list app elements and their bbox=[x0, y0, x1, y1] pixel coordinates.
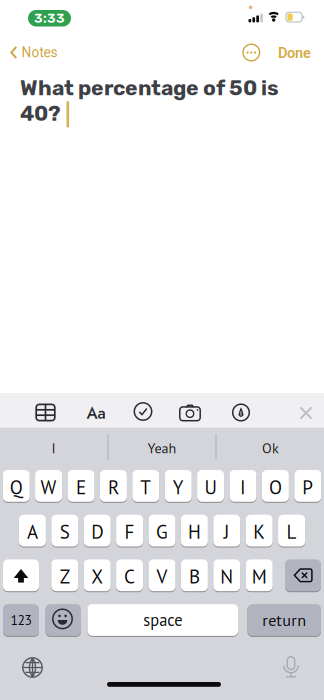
staticText: T bbox=[140, 475, 151, 499]
staticText: A bbox=[27, 519, 38, 544]
staticText: H bbox=[188, 519, 201, 544]
button[interactable]: X bbox=[84, 559, 111, 592]
staticText: L bbox=[287, 519, 297, 544]
button[interactable]: I bbox=[229, 470, 256, 503]
staticText: O bbox=[269, 475, 282, 499]
staticText: 123 bbox=[10, 611, 31, 629]
staticText: Ok bbox=[262, 439, 279, 457]
button[interactable]: O bbox=[262, 470, 289, 503]
button[interactable]: Ok bbox=[217, 429, 324, 467]
button[interactable]: L bbox=[278, 515, 305, 547]
button[interactable]: C bbox=[116, 559, 143, 592]
button[interactable]: E bbox=[67, 470, 94, 503]
staticText: space bbox=[143, 609, 182, 631]
staticText: Y bbox=[173, 475, 184, 499]
button[interactable]: Emoji bbox=[45, 604, 81, 637]
staticText: What percentage of 50 is 40? bbox=[20, 76, 279, 126]
button[interactable]: A bbox=[19, 515, 46, 547]
button[interactable]: Return bbox=[247, 604, 321, 637]
button[interactable]: N bbox=[213, 559, 240, 592]
staticText: Done bbox=[278, 45, 311, 62]
staticText: Aa bbox=[86, 401, 105, 425]
staticText: I bbox=[51, 439, 55, 457]
staticText: C bbox=[124, 564, 135, 589]
staticText: S bbox=[60, 519, 70, 544]
button[interactable]: Dismiss keyboard bbox=[299, 406, 313, 420]
button[interactable]: M bbox=[246, 559, 273, 592]
button[interactable]: Z bbox=[51, 559, 78, 592]
button[interactable]: P bbox=[294, 470, 321, 503]
staticText: I bbox=[240, 475, 246, 499]
button[interactable]: K bbox=[246, 515, 273, 547]
button[interactable]: I bbox=[0, 429, 107, 467]
button[interactable]: H bbox=[181, 515, 208, 547]
button[interactable]: D bbox=[84, 515, 111, 547]
staticText: Q bbox=[10, 475, 23, 499]
staticText: V bbox=[156, 564, 167, 589]
button[interactable]: Done bbox=[278, 45, 311, 62]
staticText: M bbox=[252, 564, 267, 589]
button[interactable]: Shift bbox=[3, 559, 39, 592]
staticText: K bbox=[253, 519, 265, 544]
button[interactable]: W bbox=[35, 470, 62, 503]
button[interactable]: Insert table bbox=[34, 402, 56, 422]
button[interactable]: Camera bbox=[179, 402, 203, 422]
staticText: D bbox=[91, 519, 103, 544]
button[interactable]: Dictate bbox=[283, 656, 299, 678]
staticText: B bbox=[189, 564, 200, 589]
staticText: N bbox=[220, 564, 233, 589]
button[interactable]: F bbox=[116, 515, 143, 547]
button[interactable]: Format bbox=[86, 401, 105, 425]
staticText: return bbox=[262, 609, 306, 630]
button[interactable]: More bbox=[243, 44, 260, 61]
staticText: Notes bbox=[21, 44, 57, 61]
button[interactable]: space bbox=[87, 604, 238, 637]
staticText: X bbox=[91, 564, 103, 589]
button[interactable]: Numbers bbox=[3, 604, 39, 637]
staticText: W bbox=[41, 475, 57, 499]
button[interactable]: Next keyboard bbox=[21, 656, 43, 678]
staticText: J bbox=[224, 519, 230, 544]
button[interactable]: T bbox=[132, 470, 159, 503]
staticText: E bbox=[76, 475, 86, 499]
button[interactable]: Notes bbox=[10, 42, 57, 62]
button[interactable]: Markup bbox=[231, 402, 251, 422]
button[interactable]: Yeah bbox=[108, 429, 216, 467]
button[interactable]: J bbox=[213, 515, 240, 547]
button[interactable]: G bbox=[148, 515, 175, 547]
button[interactable]: Delete bbox=[285, 559, 321, 592]
staticText: Yeah bbox=[147, 439, 176, 457]
staticText: P bbox=[302, 475, 313, 499]
button[interactable]: Y bbox=[165, 470, 192, 503]
staticText: G bbox=[156, 519, 168, 544]
staticText: Z bbox=[60, 564, 70, 589]
button[interactable]: Checklist bbox=[133, 401, 153, 421]
button[interactable]: B bbox=[181, 559, 208, 592]
staticText: R bbox=[108, 475, 119, 499]
staticText: U bbox=[205, 475, 217, 499]
button[interactable]: Q bbox=[3, 470, 30, 503]
button[interactable]: S bbox=[51, 515, 78, 547]
button[interactable]: V bbox=[148, 559, 175, 592]
button[interactable]: U bbox=[197, 470, 224, 503]
button[interactable]: R bbox=[100, 470, 127, 503]
staticText: F bbox=[125, 519, 135, 544]
staticText: 3:33 bbox=[34, 10, 65, 26]
